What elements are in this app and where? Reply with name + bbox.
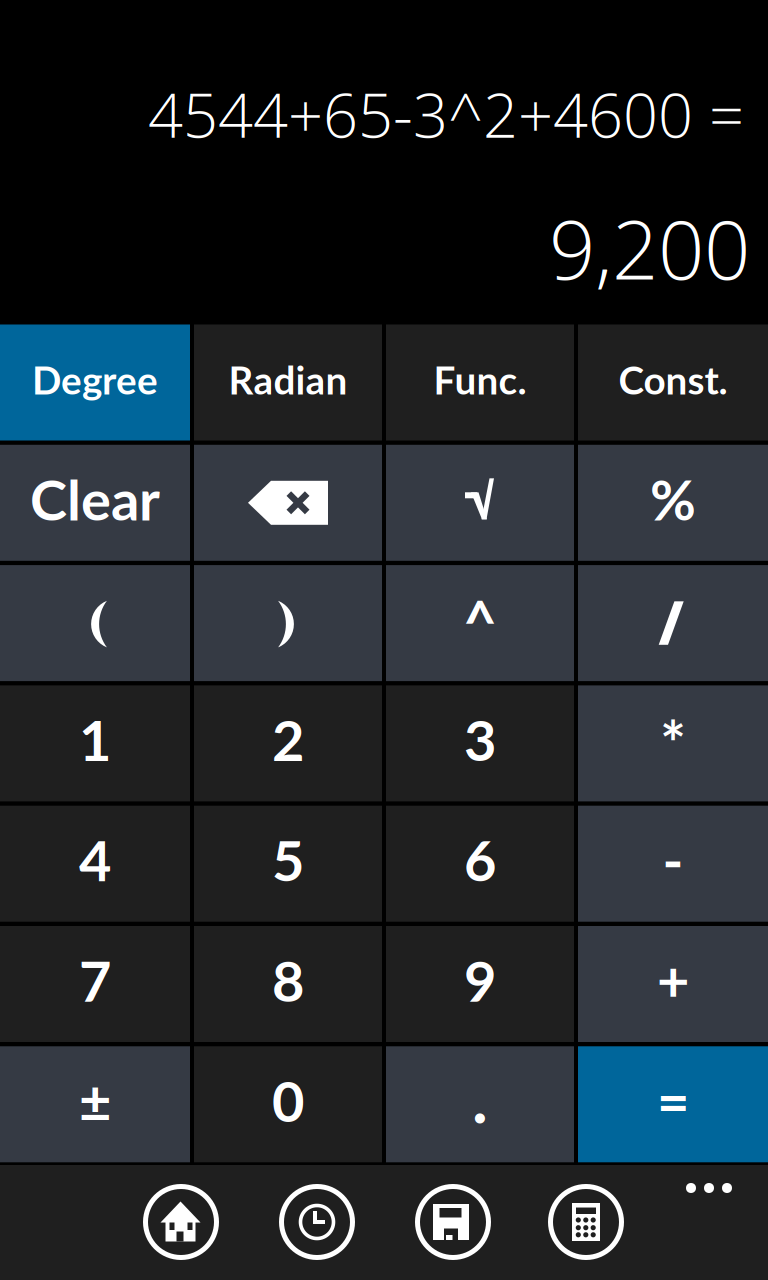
button[interactable]: 7 bbox=[0, 926, 190, 1042]
staticText: - bbox=[662, 826, 683, 893]
staticText: 1 bbox=[79, 706, 111, 773]
staticText: 9 bbox=[464, 946, 496, 1014]
staticText: 3 bbox=[464, 706, 496, 773]
staticText: 4544+65-3^2+4600 = bbox=[148, 72, 744, 156]
staticText: Degree bbox=[32, 356, 158, 403]
button[interactable]: More bbox=[665, 1166, 753, 1210]
staticText: 7 bbox=[79, 946, 111, 1014]
button[interactable]: Func. bbox=[386, 324, 574, 440]
staticText: ^ bbox=[463, 586, 497, 656]
staticText: 9,200 bbox=[549, 193, 750, 303]
button[interactable]: Clear bbox=[0, 445, 190, 561]
button[interactable]: 4 bbox=[0, 806, 190, 922]
staticText: Const. bbox=[618, 356, 727, 403]
staticText: 4 bbox=[79, 826, 111, 893]
staticText: * bbox=[660, 706, 686, 779]
button[interactable]: Square root bbox=[386, 445, 574, 561]
button[interactable]: History bbox=[279, 1184, 355, 1260]
button[interactable]: 5 bbox=[194, 806, 382, 922]
button[interactable]: ( bbox=[0, 565, 190, 681]
button[interactable]: 6 bbox=[386, 806, 574, 922]
staticText: Clear bbox=[30, 465, 160, 532]
staticText: 5 bbox=[272, 826, 304, 893]
button[interactable]: Divide bbox=[578, 565, 768, 681]
button[interactable]: * bbox=[578, 685, 768, 801]
button[interactable]: 3 bbox=[386, 685, 574, 801]
staticText: 6 bbox=[464, 826, 496, 893]
button[interactable]: Radian bbox=[194, 324, 382, 440]
button[interactable]: ) bbox=[194, 565, 382, 681]
staticText: ± bbox=[79, 1067, 111, 1134]
button[interactable]: ^ bbox=[386, 565, 574, 681]
button[interactable]: Save bbox=[415, 1184, 491, 1260]
staticText: + bbox=[657, 946, 689, 1014]
button[interactable]: 9 bbox=[386, 926, 574, 1042]
staticText: Func. bbox=[433, 356, 526, 403]
button[interactable]: + bbox=[578, 926, 768, 1042]
staticText: = bbox=[657, 1067, 689, 1134]
staticText: % bbox=[650, 465, 696, 532]
staticText: 0 bbox=[272, 1067, 304, 1134]
button[interactable]: Home bbox=[143, 1184, 219, 1260]
button[interactable]: % bbox=[578, 445, 768, 561]
button[interactable]: 8 bbox=[194, 926, 382, 1042]
staticText: 8 bbox=[272, 946, 304, 1014]
button[interactable]: ± bbox=[0, 1046, 190, 1162]
button[interactable]: = bbox=[578, 1046, 768, 1162]
button[interactable]: 1 bbox=[0, 685, 190, 801]
button[interactable]: 0 bbox=[194, 1046, 382, 1162]
button[interactable]: . bbox=[386, 1046, 574, 1162]
staticText: . bbox=[472, 1057, 488, 1137]
button[interactable]: - bbox=[578, 806, 768, 922]
staticText: 2 bbox=[272, 706, 304, 773]
button[interactable]: Degree bbox=[0, 324, 190, 440]
button[interactable]: Calculator bbox=[548, 1184, 624, 1260]
button[interactable]: Const. bbox=[578, 324, 768, 440]
button[interactable]: Backspace bbox=[194, 445, 382, 561]
staticText: Radian bbox=[228, 356, 347, 403]
button[interactable]: 2 bbox=[194, 685, 382, 801]
